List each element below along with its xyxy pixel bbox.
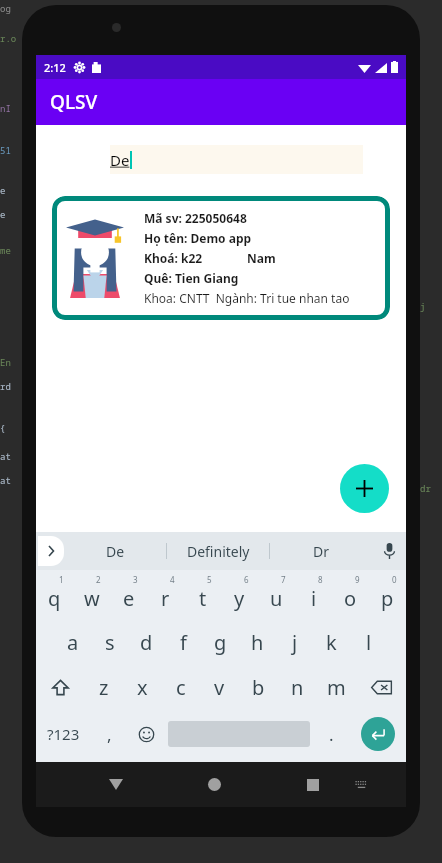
staticText: Mã sv: 225050648	[144, 210, 247, 226]
staticText: a	[67, 629, 79, 656]
staticText: p	[381, 585, 394, 612]
button[interactable]: 3	[110, 570, 147, 620]
staticText: De	[110, 150, 130, 170]
staticText: v	[214, 674, 225, 701]
button[interactable]: s	[91, 620, 128, 665]
staticText: 51	[0, 144, 11, 156]
button[interactable]: n	[278, 665, 317, 710]
button[interactable]: f	[165, 620, 202, 665]
button[interactable]: Backspace	[356, 665, 406, 710]
button[interactable]: ?123	[36, 710, 91, 758]
staticText: 2:12	[44, 60, 66, 75]
staticText: 5	[207, 574, 212, 585]
staticText: k	[326, 629, 337, 656]
button[interactable]: m	[317, 665, 356, 710]
button[interactable]: 4	[147, 570, 184, 620]
other: Keyboard indicator	[337, 762, 386, 807]
button[interactable]: ,	[91, 710, 128, 758]
button[interactable]: 1	[36, 570, 73, 620]
button[interactable]: h	[239, 620, 276, 665]
button[interactable]: Definitely	[167, 532, 269, 570]
button[interactable]: Dr	[270, 532, 372, 570]
button[interactable]: Mã sv: 225050648	[52, 196, 390, 320]
staticText: ,	[107, 723, 112, 746]
staticText: e	[0, 184, 6, 196]
button[interactable]: l	[350, 620, 387, 665]
staticText: Khoa: CNTT Ngành: Tri tue nhan tao	[144, 290, 350, 306]
staticText: i	[311, 585, 317, 612]
button[interactable]: 0	[369, 570, 406, 620]
staticText: De	[106, 542, 125, 561]
button[interactable]: Home	[190, 762, 239, 807]
staticText: d	[140, 629, 153, 656]
button[interactable]: c	[161, 665, 200, 710]
button[interactable]: De	[64, 532, 166, 570]
button[interactable]: a	[54, 620, 91, 665]
staticText: 2	[96, 574, 101, 585]
button[interactable]: 8	[295, 570, 332, 620]
button[interactable]: 7	[258, 570, 295, 620]
staticText: nI	[0, 102, 11, 114]
button[interactable]: Voice input	[372, 532, 406, 570]
staticText: Họ tên: Demo app	[144, 230, 252, 246]
staticText: r	[161, 585, 170, 612]
button[interactable]: 9	[332, 570, 369, 620]
button[interactable]: Enter	[361, 717, 395, 751]
button[interactable]: More suggestions	[38, 536, 64, 566]
staticText: 6	[244, 574, 249, 585]
staticText: l	[366, 629, 372, 656]
staticText: Dr	[313, 542, 330, 561]
staticText: at	[0, 450, 11, 462]
staticText: Definitely	[187, 542, 250, 561]
staticText: 1	[59, 574, 64, 585]
staticText: dr	[420, 482, 431, 494]
staticText: {	[0, 422, 6, 434]
button[interactable]: 5	[184, 570, 221, 620]
staticText: Khoá: k22	[144, 250, 203, 266]
staticText: c	[176, 674, 186, 701]
staticText: 8	[318, 574, 323, 585]
staticText: z	[99, 674, 109, 701]
staticText: QLSV	[50, 89, 98, 115]
button[interactable]: Emoji	[128, 710, 165, 758]
staticText: j	[292, 629, 298, 656]
staticText: Quê: Tien Giang	[144, 270, 239, 286]
staticText: w	[84, 585, 100, 612]
staticText: og	[0, 2, 11, 14]
button[interactable]: Back	[91, 762, 141, 807]
staticText: 0	[392, 574, 397, 585]
staticText: o	[344, 585, 357, 612]
staticText: g	[214, 629, 227, 656]
staticText: .	[329, 723, 334, 746]
staticText: h	[251, 629, 264, 656]
button[interactable]: g	[202, 620, 239, 665]
staticText: 3	[133, 574, 138, 585]
staticText: ?123	[47, 724, 80, 744]
staticText: s	[105, 629, 115, 656]
button[interactable]: 6	[221, 570, 258, 620]
button[interactable]: De	[110, 145, 363, 174]
button[interactable]: x	[123, 665, 161, 710]
button[interactable]: j	[276, 620, 313, 665]
staticText: rd	[0, 380, 11, 392]
staticText: r.o	[0, 32, 17, 44]
staticText: e	[0, 208, 6, 220]
button[interactable]: .	[313, 710, 350, 758]
staticText: me	[0, 244, 11, 256]
button[interactable]: v	[200, 665, 239, 710]
staticText: 7	[281, 574, 286, 585]
button[interactable]: Shift	[36, 665, 85, 710]
staticText: u	[270, 585, 283, 612]
staticText: t	[199, 585, 207, 612]
button[interactable]: b	[239, 665, 278, 710]
button[interactable]: d	[128, 620, 165, 665]
button[interactable]: 2	[73, 570, 110, 620]
staticText: 9	[355, 574, 360, 585]
button[interactable]: k	[313, 620, 350, 665]
staticText: Nam	[247, 250, 276, 266]
button[interactable]: Add student	[340, 464, 389, 513]
button[interactable]: z	[85, 665, 123, 710]
button[interactable]: Recents	[288, 762, 337, 807]
staticText: at	[0, 474, 11, 486]
